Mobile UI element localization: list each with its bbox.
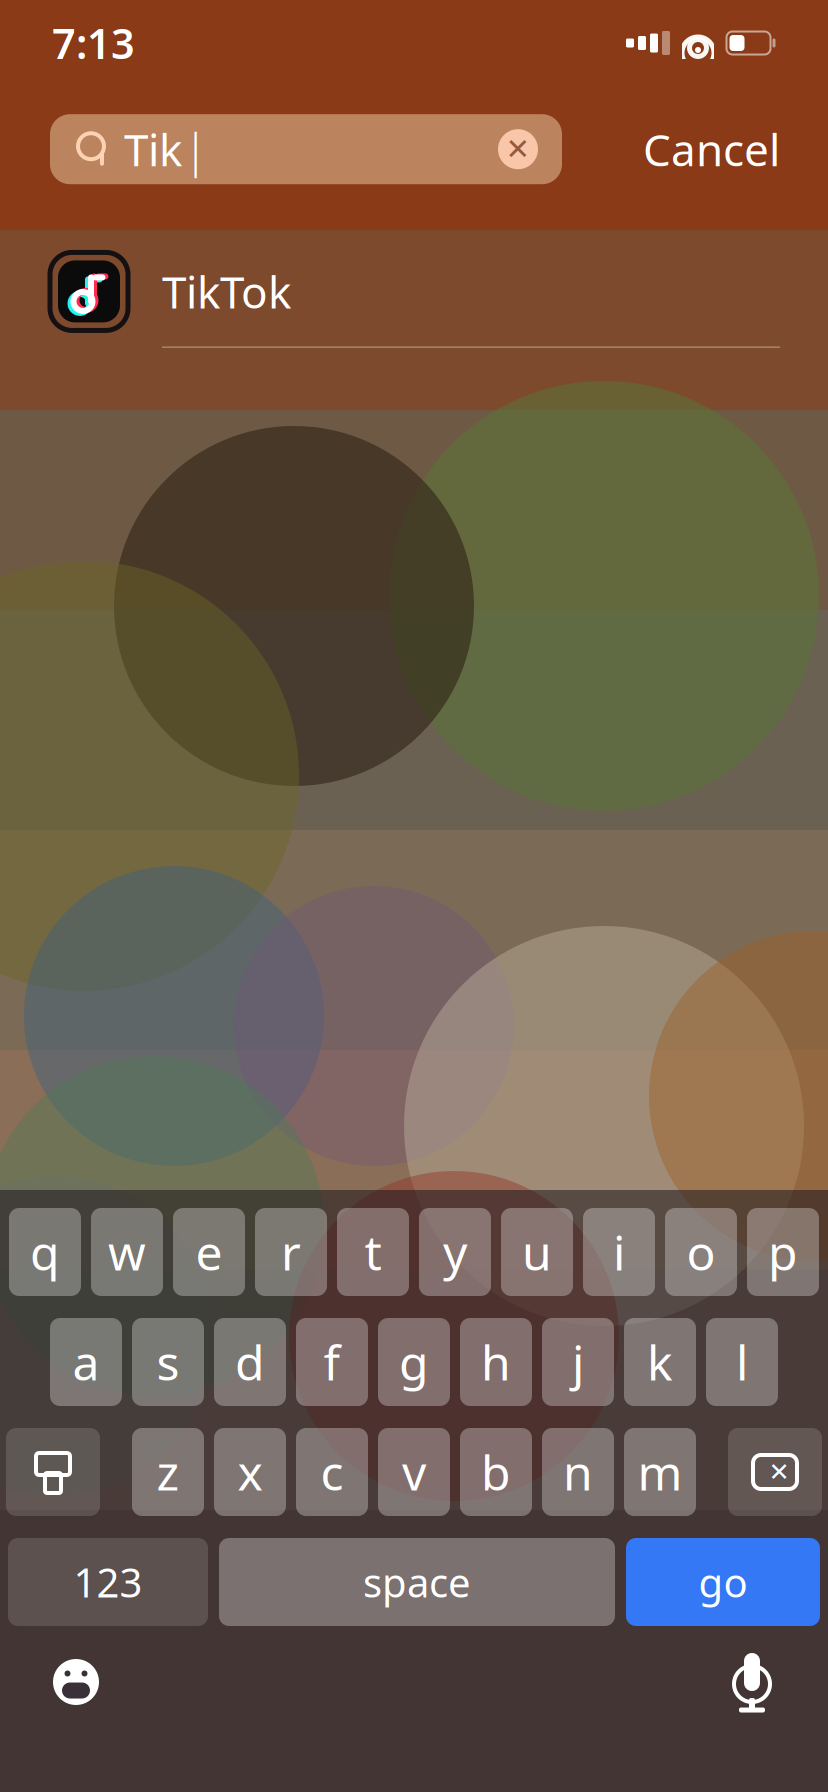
- staticText: |: [183, 118, 208, 180]
- staticText: u: [522, 1220, 552, 1284]
- button[interactable]: k: [624, 1318, 696, 1406]
- staticText: l: [736, 1330, 748, 1394]
- button[interactable]: g: [378, 1318, 450, 1406]
- staticText: o: [686, 1220, 715, 1284]
- staticText: go: [698, 1555, 747, 1608]
- staticText: m: [637, 1440, 682, 1504]
- button[interactable]: t: [337, 1208, 409, 1296]
- button[interactable]: z: [132, 1428, 204, 1516]
- button[interactable]: w: [91, 1208, 163, 1296]
- staticText: Cancel: [643, 120, 780, 178]
- staticText: k: [647, 1330, 673, 1394]
- button[interactable]: s: [132, 1318, 204, 1406]
- button[interactable]: b: [460, 1428, 532, 1516]
- staticText: g: [399, 1330, 429, 1394]
- button[interactable]: p: [747, 1208, 819, 1296]
- button[interactable]: Tik: [50, 114, 562, 184]
- staticText: Tik: [124, 120, 182, 178]
- staticText: 123: [73, 1555, 142, 1608]
- button[interactable]: q: [9, 1208, 81, 1296]
- button[interactable]: u: [501, 1208, 573, 1296]
- button[interactable]: l: [706, 1318, 778, 1406]
- staticText: n: [563, 1440, 593, 1504]
- button[interactable]: Emoji keyboard: [36, 1642, 116, 1722]
- button[interactable]: Shift: [6, 1428, 100, 1516]
- button[interactable]: o: [665, 1208, 737, 1296]
- button[interactable]: TikTok: [0, 236, 828, 346]
- staticText: c: [320, 1440, 343, 1504]
- staticText: f: [323, 1330, 340, 1394]
- staticText: w: [108, 1220, 146, 1284]
- button[interactable]: r: [255, 1208, 327, 1296]
- button[interactable]: e: [173, 1208, 245, 1296]
- button[interactable]: Dictation: [712, 1642, 792, 1722]
- staticText: s: [156, 1330, 179, 1394]
- staticText: r: [281, 1220, 301, 1284]
- button[interactable]: x: [214, 1428, 286, 1516]
- staticText: q: [30, 1220, 60, 1284]
- staticText: ✕: [768, 1458, 789, 1486]
- staticText: v: [402, 1440, 426, 1504]
- staticText: d: [235, 1330, 265, 1394]
- staticText: TikTok: [162, 262, 291, 321]
- button[interactable]: Cancel: [637, 106, 786, 192]
- staticText: i: [613, 1220, 625, 1284]
- staticText: space: [363, 1555, 471, 1608]
- button[interactable]: i: [583, 1208, 655, 1296]
- button[interactable]: 123: [8, 1538, 208, 1626]
- staticText: ✕: [505, 133, 530, 166]
- staticText: y: [443, 1220, 467, 1284]
- button[interactable]: j: [542, 1318, 614, 1406]
- button[interactable]: m: [624, 1428, 696, 1516]
- staticText: b: [481, 1440, 511, 1504]
- staticText: j: [572, 1330, 584, 1394]
- staticText: z: [156, 1440, 179, 1504]
- button[interactable]: space: [219, 1538, 615, 1626]
- button[interactable]: c: [296, 1428, 368, 1516]
- button[interactable]: v: [378, 1428, 450, 1516]
- button[interactable]: d: [214, 1318, 286, 1406]
- button[interactable]: f: [296, 1318, 368, 1406]
- button[interactable]: go: [626, 1538, 820, 1626]
- button[interactable]: Delete: [728, 1428, 822, 1516]
- staticText: 7:13: [52, 16, 135, 70]
- button[interactable]: n: [542, 1428, 614, 1516]
- staticText: a: [72, 1330, 99, 1394]
- staticText: e: [195, 1220, 222, 1284]
- staticText: p: [768, 1220, 798, 1284]
- button[interactable]: y: [419, 1208, 491, 1296]
- staticText: h: [481, 1330, 511, 1394]
- staticText: x: [237, 1440, 262, 1504]
- button[interactable]: a: [50, 1318, 122, 1406]
- button[interactable]: h: [460, 1318, 532, 1406]
- staticText: t: [364, 1220, 381, 1284]
